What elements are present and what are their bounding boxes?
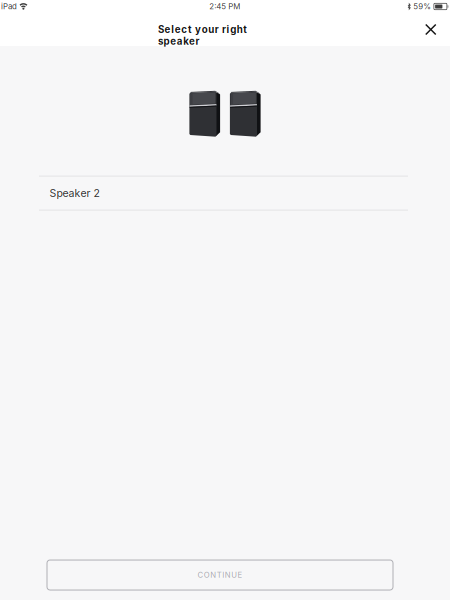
button[interactable]: Close — [419, 19, 442, 40]
staticText: iPad — [1, 2, 17, 11]
staticText: 2:45 PM — [209, 2, 240, 11]
staticText: Speaker 2 — [49, 187, 99, 199]
button[interactable]: Speaker 2 — [39, 177, 408, 210]
staticText: CONTINUE — [197, 570, 243, 580]
staticText: Select your right speaker — [158, 24, 292, 35]
staticText: 59% — [413, 2, 431, 11]
button[interactable]: CONTINUE — [47, 560, 393, 590]
